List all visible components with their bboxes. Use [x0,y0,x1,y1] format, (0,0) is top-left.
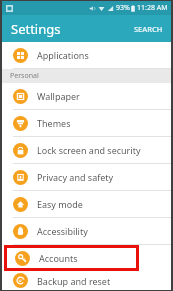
staticText: 11:28 AM [137,3,168,13]
button[interactable]: Backup and reset [2,271,171,290]
button[interactable]: Applications [2,42,171,68]
staticText: Settings [11,20,61,38]
staticText: Personal [10,71,39,81]
staticText: Wallpaper [37,90,80,102]
button[interactable]: Easy mode [2,191,171,217]
button[interactable]: Themes [2,110,171,136]
button[interactable]: Wallpaper [2,83,171,109]
staticText: Accessibility [37,225,88,237]
button[interactable]: Lock screen and security [2,137,171,163]
staticText: Lock screen and security [37,144,141,156]
staticText: 93% [116,3,130,13]
button[interactable]: Accessibility [2,218,171,244]
button[interactable]: Accounts [7,248,136,268]
staticText: Backup and reset [37,275,111,287]
staticText: Accounts [39,252,78,264]
staticText: Applications [37,49,89,61]
button[interactable]: Privacy and safety [2,164,171,190]
staticText: Privacy and safety [37,171,114,183]
staticText: SEARCH [134,24,163,34]
staticText: Easy mode [37,198,83,210]
button[interactable]: SEARCH [126,18,171,40]
staticText: Themes [37,117,71,129]
